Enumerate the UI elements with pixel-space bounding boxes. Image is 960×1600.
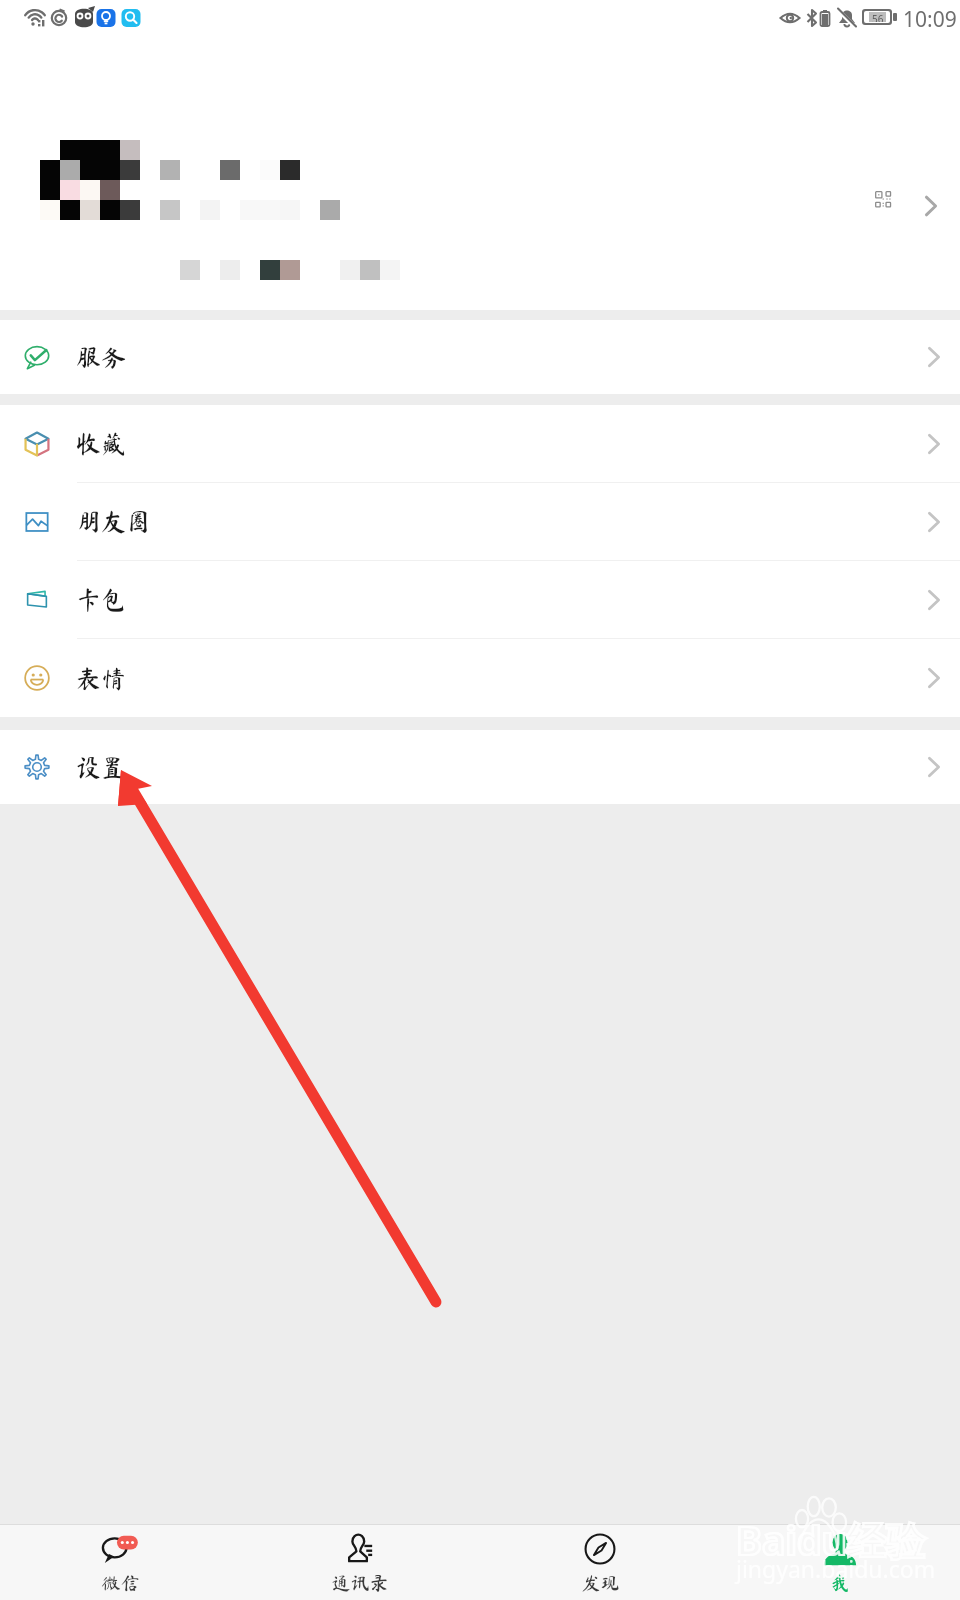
button[interactable]: 表情 [0,639,960,717]
staticText: 设置 [76,755,127,780]
button[interactable]: My QR code [0,46,960,310]
staticText: 56 [872,12,884,22]
button[interactable]: 收藏 [0,405,960,482]
button[interactable]: My QR code [862,178,906,222]
button[interactable]: 微信 [0,1525,240,1600]
staticText: 收藏 [76,431,127,456]
button[interactable]: 朋友圈 [0,483,960,560]
staticText: 朋友圈 [76,509,152,534]
staticText: 表情 [76,666,127,691]
button[interactable]: 设置 [0,730,960,804]
staticText: 10:09 [903,5,957,34]
staticText: 服务 [76,345,127,370]
staticText: 通讯录 [331,1573,389,1592]
button[interactable]: 发现 [480,1525,720,1600]
staticText: jingyan.baidu.com [736,1553,936,1584]
button[interactable]: 卡包 [0,561,960,638]
staticText: Baidu经验 [736,1513,925,1566]
button[interactable]: 服务 [0,320,960,394]
button[interactable]: 我 [720,1525,960,1600]
staticText: 我 [830,1573,850,1592]
staticText: 微信 [101,1573,140,1592]
staticText: 发现 [581,1573,620,1592]
staticText: 卡包 [76,587,127,612]
button[interactable]: 通讯录 [240,1525,480,1600]
